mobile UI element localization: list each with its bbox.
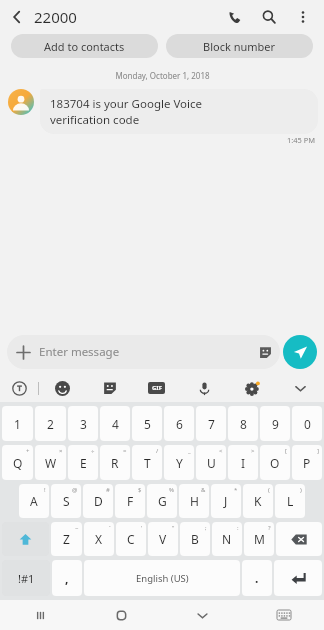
button[interactable]: Settings [228, 374, 276, 402]
button[interactable]: X [84, 522, 114, 556]
button[interactable]: 6 [164, 406, 194, 441]
button[interactable]: S [51, 484, 81, 518]
button[interactable]: English (US) [84, 560, 240, 596]
button[interactable]: Send [283, 335, 317, 369]
button[interactable]: Home [81, 600, 162, 630]
button[interactable]: P [292, 445, 322, 480]
button[interactable]: K [243, 484, 273, 518]
button[interactable]: W [35, 445, 66, 480]
staticText: $ [138, 486, 142, 494]
button[interactable]: H [179, 484, 209, 518]
staticText: / [156, 447, 159, 455]
staticText: N [222, 531, 232, 547]
staticText: ] [317, 447, 319, 455]
button[interactable]: D [83, 484, 113, 518]
staticText: !#1 [18, 571, 35, 586]
staticText: F [127, 493, 134, 509]
staticText: H [190, 493, 199, 509]
button[interactable]: !#1 [2, 560, 50, 596]
button[interactable]: C [116, 522, 146, 556]
button[interactable]: 4 [100, 406, 130, 441]
button[interactable]: . [242, 560, 272, 596]
button[interactable]: Back [0, 0, 34, 34]
staticText: ; [205, 524, 207, 532]
staticText: < [219, 447, 223, 455]
staticText: 7 [208, 416, 215, 432]
button[interactable]: Add to contacts [11, 34, 158, 58]
button[interactable]: G [147, 484, 177, 518]
button[interactable]: Recents [0, 600, 81, 630]
button[interactable]: Attach [7, 335, 280, 369]
button[interactable]: Translate [0, 374, 38, 402]
button[interactable]: Emoji [39, 374, 86, 402]
button[interactable]: V [148, 522, 178, 556]
button[interactable]: 8 [228, 406, 258, 441]
staticText: @ [72, 486, 78, 494]
button[interactable]: Search [252, 0, 286, 34]
staticText: A [30, 493, 38, 509]
button[interactable]: , [52, 560, 82, 596]
button[interactable]: Z [51, 522, 82, 556]
staticText: % [169, 486, 174, 494]
button[interactable]: 7 [196, 406, 226, 441]
button[interactable]: 1 [2, 406, 33, 441]
button[interactable]: Keyboard layout [243, 600, 324, 630]
button[interactable]: M [244, 522, 274, 556]
staticText: 3 [80, 416, 87, 432]
button[interactable]: B [180, 522, 210, 556]
staticText: B [191, 531, 199, 547]
button[interactable]: E [68, 445, 98, 480]
button[interactable]: Shift [2, 522, 49, 556]
staticText: * [234, 486, 238, 494]
staticText: 9 [272, 416, 279, 432]
button[interactable]: Expand [276, 374, 324, 402]
button[interactable]: Enter [274, 560, 322, 596]
staticText: C [127, 531, 135, 547]
button[interactable]: 3 [68, 406, 98, 441]
button[interactable]: T [132, 445, 162, 480]
button[interactable]: Backspace [276, 522, 322, 556]
staticText: W [45, 455, 57, 471]
button[interactable]: 9 [260, 406, 290, 441]
other: Attach [7, 336, 39, 368]
button[interactable]: Y [164, 445, 194, 480]
staticText: " [172, 524, 175, 532]
button[interactable]: N [212, 522, 242, 556]
button[interactable]: O [260, 445, 290, 480]
button[interactable]: 5 [132, 406, 162, 441]
staticText: Enter message [39, 344, 120, 360]
button[interactable]: I [228, 445, 258, 480]
button[interactable]: GIF [133, 374, 180, 402]
button[interactable]: Call [218, 0, 252, 34]
staticText: Y [176, 455, 183, 471]
staticText: > [251, 447, 255, 455]
staticText: Z [63, 531, 70, 547]
staticText: 8 [240, 416, 247, 432]
button[interactable]: U [196, 445, 226, 480]
button[interactable]: More options [286, 0, 320, 34]
button[interactable]: R [100, 445, 130, 480]
button[interactable]: Block number [166, 34, 313, 58]
staticText: 6 [176, 416, 183, 432]
button[interactable]: Q [2, 445, 33, 480]
button[interactable]: L [275, 484, 305, 518]
button[interactable]: F [115, 484, 145, 518]
button[interactable]: J [211, 484, 241, 518]
staticText: English (US) [136, 572, 189, 585]
staticText: [ [285, 447, 287, 455]
button[interactable]: 183704 is your Google Voice verification… [40, 89, 318, 134]
button[interactable]: Stickers [250, 337, 280, 367]
staticText: P [303, 455, 311, 471]
staticText: ! [44, 486, 46, 494]
button[interactable]: Voice input [180, 374, 228, 402]
button[interactable]: 0 [292, 406, 322, 441]
staticText: . [255, 570, 259, 586]
button[interactable]: Hide keyboard [162, 600, 243, 630]
staticText: & [201, 486, 206, 494]
staticText: GIF [152, 384, 162, 392]
staticText: × [59, 447, 63, 455]
button[interactable]: 2 [35, 406, 66, 441]
button[interactable]: Stickers [86, 374, 133, 402]
staticText: ' [141, 524, 143, 532]
button[interactable]: A [19, 484, 49, 518]
